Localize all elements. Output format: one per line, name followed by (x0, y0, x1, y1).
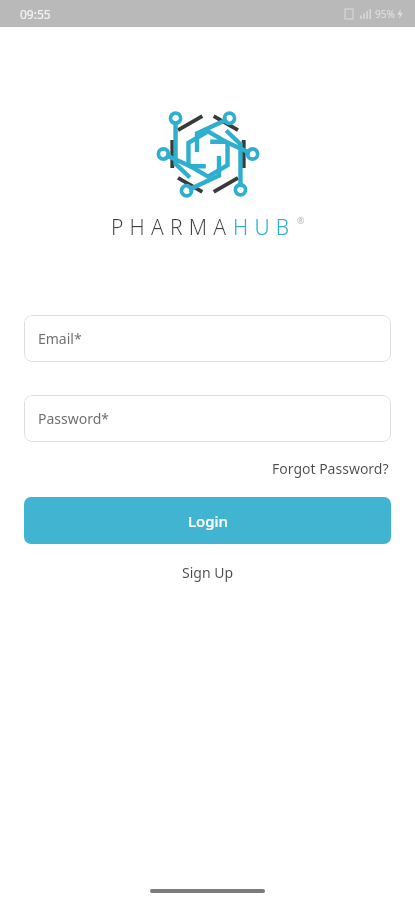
staticText: 95% (375, 7, 395, 21)
button[interactable]: Login (24, 497, 391, 544)
staticText: HUB (233, 213, 296, 242)
button[interactable]: Password* (24, 395, 391, 442)
staticText: PHARMA (111, 213, 233, 242)
button[interactable]: Sign Up (174, 559, 242, 586)
staticText: Password* (38, 409, 110, 428)
button[interactable]: Email* (24, 315, 391, 362)
staticText: Sign Up (182, 563, 234, 582)
staticText: ® (297, 214, 305, 226)
button[interactable]: Forgot Password? (270, 456, 391, 481)
staticText: Forgot Password? (272, 459, 389, 478)
staticText: Login (188, 511, 228, 531)
staticText: 09:55 (20, 6, 51, 22)
staticText: Email* (38, 329, 82, 348)
